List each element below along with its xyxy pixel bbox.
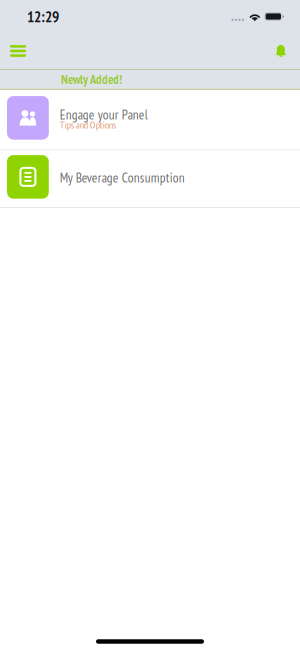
staticText: My Beverage Consumption: [60, 169, 185, 186]
staticText: 12:29: [27, 7, 59, 26]
staticText: Tips and Options: [60, 118, 116, 131]
button[interactable]: Engage your Panel: [0, 90, 300, 149]
staticText: Engage your Panel: [60, 106, 148, 123]
staticText: Newly Added!: [61, 71, 122, 87]
button[interactable]: Notifications: [262, 33, 300, 69]
button[interactable]: My Beverage Consumption: [0, 150, 300, 207]
button[interactable]: Menu: [0, 33, 37, 69]
